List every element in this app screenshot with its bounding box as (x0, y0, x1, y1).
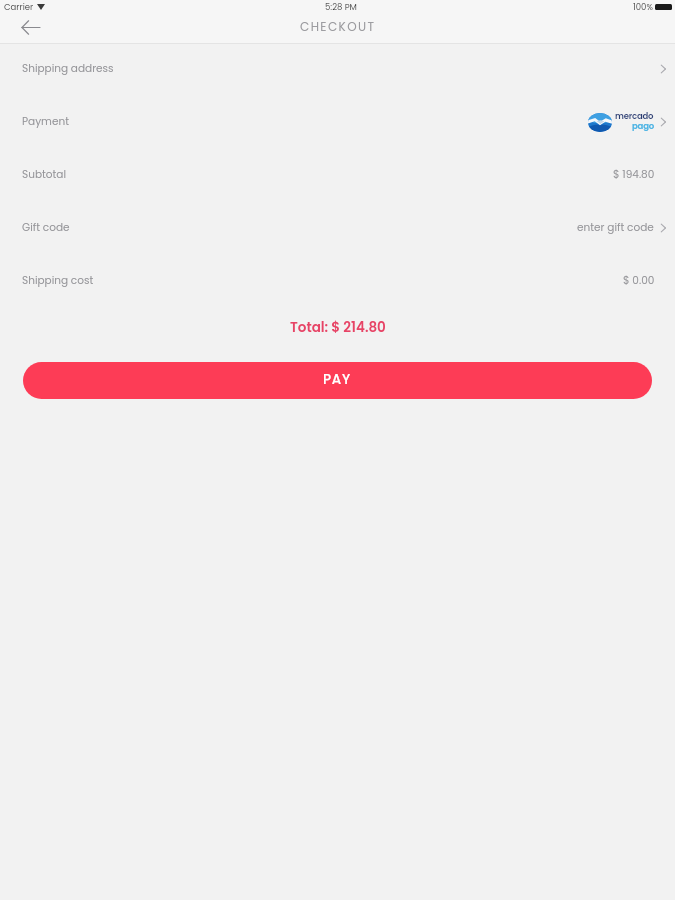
staticText: Gift code (22, 220, 70, 235)
staticText: CHECKOUT (300, 18, 376, 35)
staticText: Carrier (4, 1, 34, 13)
staticText: Shipping cost (22, 273, 94, 288)
staticText: Subtotal (22, 167, 67, 182)
button[interactable]: Shipping address (0, 44, 675, 97)
staticText: Shipping address (22, 61, 114, 76)
staticText: pago (632, 120, 654, 132)
button[interactable]: PAY (23, 362, 652, 399)
staticText: PAY (323, 370, 352, 389)
button[interactable]: Gift code (0, 203, 675, 256)
button[interactable]: Payment (0, 97, 675, 150)
staticText: Payment (22, 114, 69, 129)
staticText: $ 194.80 (613, 167, 655, 182)
button[interactable]: Back (9, 13, 52, 42)
staticText: 5:28 PM (325, 1, 357, 13)
staticText: Total: $ 214.80 (290, 318, 386, 337)
staticText: $ 0.00 (623, 273, 655, 288)
button[interactable]: Subtotal (0, 150, 675, 203)
staticText: enter gift code (577, 220, 654, 235)
button[interactable]: Shipping cost (0, 256, 675, 309)
staticText: mercado (615, 110, 654, 122)
staticText: 100% (633, 1, 653, 13)
